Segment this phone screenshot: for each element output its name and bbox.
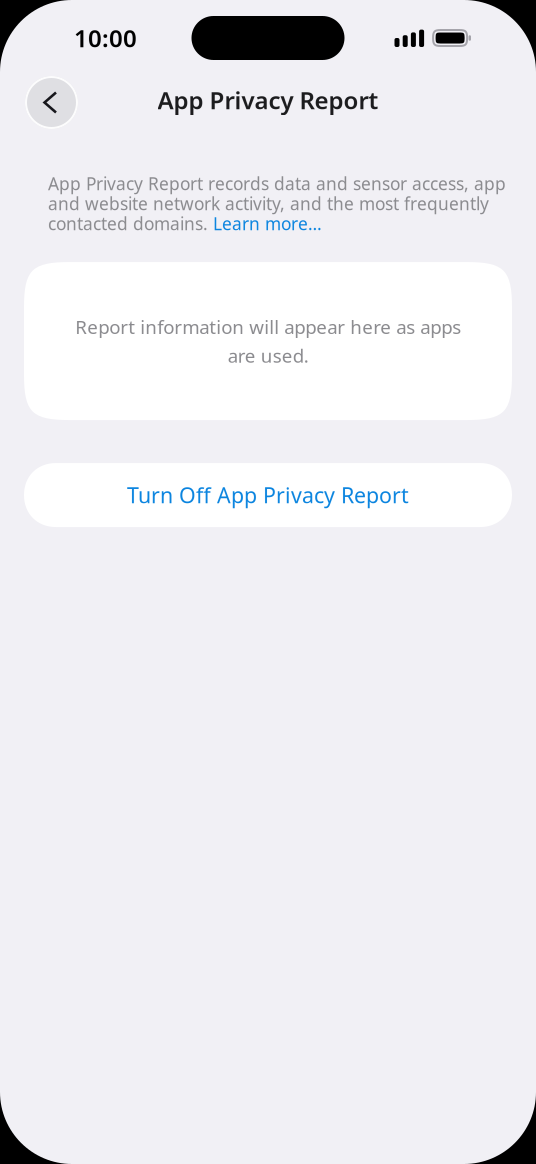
staticText: Report information will appear here as a… [75, 314, 461, 368]
button[interactable]: Turn Off App Privacy Report [0, 463, 536, 527]
staticText: App Privacy Report [157, 84, 378, 116]
staticText: Turn Off App Privacy Report [127, 481, 409, 509]
staticText: App Privacy Report records data and sens… [48, 172, 506, 195]
staticText: contacted domains. [48, 212, 213, 235]
staticText: and website network activity, and the mo… [48, 192, 489, 215]
button[interactable]: Back [21, 72, 82, 133]
staticText: 10:00 [74, 22, 137, 54]
staticText: Learn more… [213, 212, 322, 235]
button[interactable]: Learn more… [213, 212, 322, 235]
